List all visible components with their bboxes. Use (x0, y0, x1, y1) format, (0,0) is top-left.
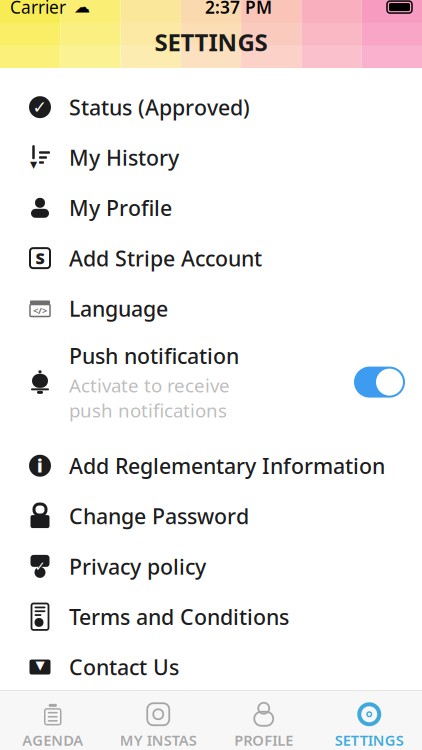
button[interactable]: </> (0, 283, 422, 334)
staticText: ✓ (32, 97, 47, 117)
staticText: Push notification (69, 342, 239, 370)
staticText: Activate to receive push notifications (69, 373, 230, 423)
staticText: </> (33, 304, 47, 317)
button[interactable]: ▼ (0, 132, 422, 183)
button[interactable]: ➔ (0, 742, 422, 750)
button[interactable]: ➔ (0, 692, 422, 742)
staticText: ▼ (30, 159, 37, 170)
staticText: PROFILE (234, 730, 293, 750)
button[interactable]: Terms and Conditions (0, 592, 422, 642)
button[interactable]: i (0, 441, 422, 491)
button[interactable]: S (0, 233, 422, 283)
staticText: AGENDA (22, 730, 83, 750)
staticText: Add Stripe Account (69, 244, 262, 272)
button[interactable]: ✓ (0, 82, 422, 132)
staticText: Terms and Conditions (69, 603, 289, 631)
staticText: Carrier (10, 0, 66, 19)
staticText: ✓ (34, 559, 45, 574)
button[interactable]: My Profile (0, 183, 422, 233)
button[interactable]: AGENDA (0, 695, 105, 750)
button[interactable]: ▼ (0, 642, 422, 692)
button[interactable]: MY INSTAS (105, 695, 211, 750)
staticText: Change Password (69, 502, 249, 530)
staticText: SETTINGS (154, 26, 267, 58)
staticText: Language (69, 294, 168, 323)
staticText: Request Approval (69, 703, 247, 731)
staticText: ▼ (35, 658, 44, 672)
staticText: Privacy policy (69, 552, 206, 580)
staticText: My Profile (69, 194, 172, 222)
button[interactable]: ✓ (0, 541, 422, 591)
staticText: SETTINGS (335, 730, 404, 750)
button[interactable]: Change Password (0, 491, 422, 541)
staticText: ➔ (34, 709, 46, 726)
staticText: Add Reglementary Information (69, 452, 385, 480)
staticText: ☁ (74, 0, 90, 16)
staticText: 2:37 PM (205, 0, 272, 19)
staticText: Contact Us (69, 653, 179, 681)
staticText: i (37, 454, 43, 477)
staticText: S (35, 247, 44, 269)
staticText: MY INSTAS (120, 730, 197, 750)
staticText: Status (Approved) (69, 93, 250, 121)
staticText: My History (69, 143, 179, 172)
button[interactable]: Push notification (0, 334, 422, 431)
button[interactable]: PROFILE (211, 695, 316, 750)
button[interactable]: SETTINGS (316, 695, 422, 750)
